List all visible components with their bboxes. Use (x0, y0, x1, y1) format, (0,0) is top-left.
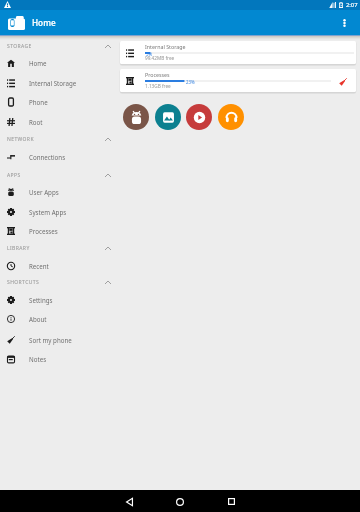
button[interactable]: Notes (0, 349, 116, 369)
staticText: Root (29, 118, 43, 126)
staticText: Sort my phone (29, 336, 72, 344)
button[interactable]: Home (160, 491, 200, 512)
staticText: 99.42MB free (145, 55, 175, 61)
staticText: 3% (146, 51, 153, 57)
staticText: 23% (186, 79, 195, 85)
staticText: Notes (29, 355, 47, 363)
staticText: SHORTCUTS (7, 279, 40, 286)
button[interactable]: Category 3 (186, 104, 212, 130)
button[interactable]: APPS (0, 166, 116, 183)
staticText: Internal Storage (145, 43, 186, 50)
staticText: Internal Storage (29, 79, 77, 87)
staticText: NETWORK (7, 136, 34, 143)
button[interactable]: Recents (211, 491, 251, 512)
button[interactable]: Root (0, 112, 116, 132)
button[interactable]: NETWORK (0, 130, 116, 147)
button[interactable]: Connections (0, 147, 116, 167)
button[interactable]: LIBRARY (0, 239, 116, 256)
staticText: Connections (29, 153, 66, 161)
button[interactable]: Navigation (8, 16, 25, 30)
staticText: LIBRARY (7, 245, 30, 252)
button[interactable]: STORAGE (0, 37, 116, 54)
staticText: About (29, 315, 47, 323)
button[interactable]: Settings (0, 290, 116, 310)
button[interactable]: Clean (339, 78, 347, 86)
staticText: Processes (29, 227, 58, 235)
button[interactable]: Back (109, 491, 149, 512)
button[interactable]: More options (336, 10, 356, 35)
button[interactable]: System Apps (0, 202, 116, 222)
staticText: Settings (29, 296, 53, 304)
button[interactable]: Home (0, 53, 116, 73)
button[interactable]: Processes (120, 69, 356, 92)
button[interactable]: Category 4 (218, 104, 244, 130)
button[interactable]: About (0, 309, 116, 329)
staticText: 1.13GB free (145, 83, 171, 89)
button[interactable]: Sort my phone (0, 330, 116, 350)
staticText: Processes (145, 71, 170, 78)
button[interactable]: Category 2 (155, 104, 181, 130)
button[interactable]: Category 1 (123, 104, 149, 130)
button[interactable]: Internal Storage (0, 73, 116, 93)
button[interactable]: Recent (0, 256, 116, 276)
button[interactable]: User Apps (0, 182, 116, 202)
button[interactable]: Phone (0, 92, 116, 112)
staticText: Home (29, 59, 47, 67)
button[interactable]: Internal Storage (120, 41, 356, 64)
staticText: Recent (29, 262, 49, 270)
button[interactable]: Processes (0, 221, 116, 241)
staticText: Phone (29, 98, 48, 106)
staticText: APPS (7, 172, 21, 179)
staticText: Home (32, 17, 56, 28)
staticText: System Apps (29, 208, 67, 216)
staticText: STORAGE (7, 43, 32, 50)
button[interactable]: SHORTCUTS (0, 273, 116, 290)
staticText: 2:07 (346, 1, 358, 9)
staticText: User Apps (29, 188, 59, 196)
